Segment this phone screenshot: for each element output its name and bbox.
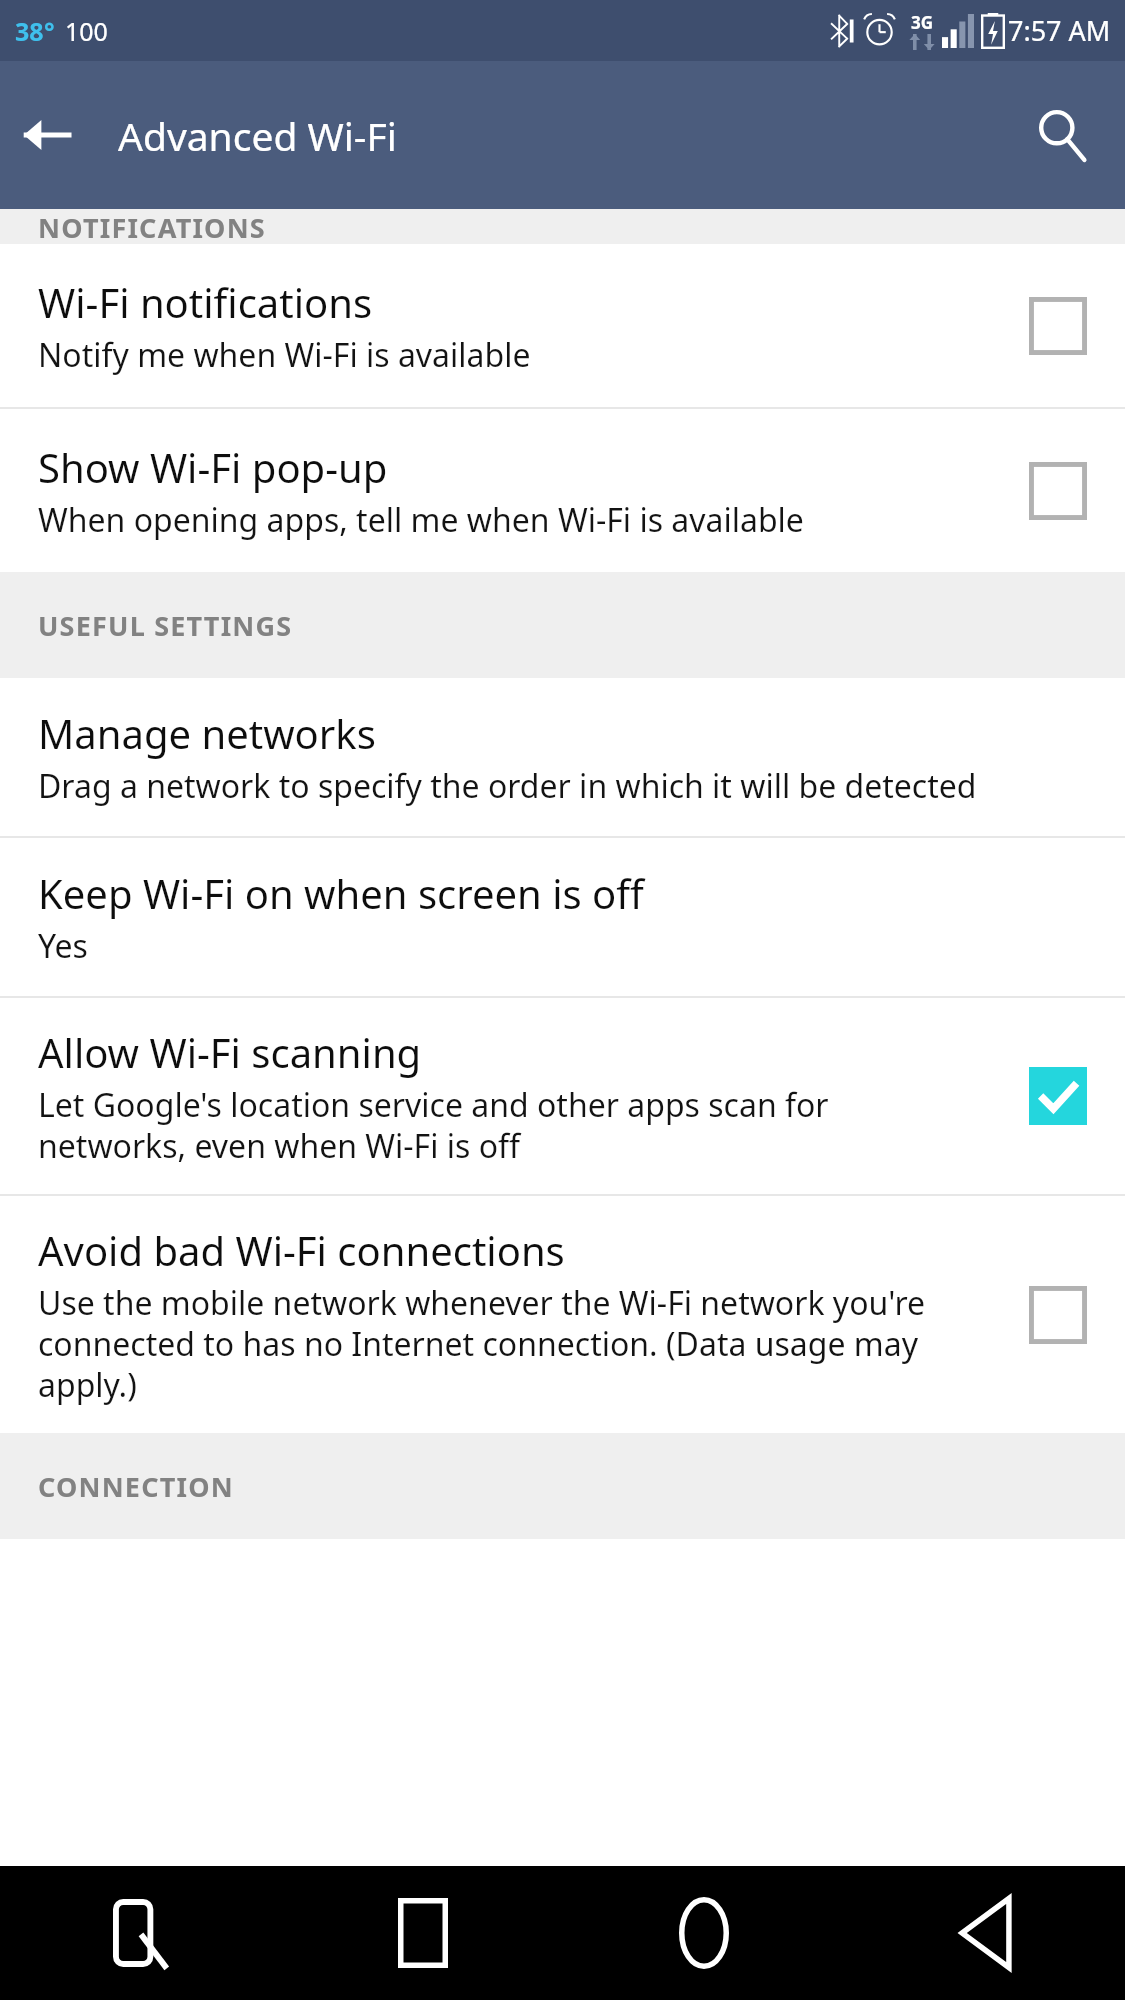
button[interactable]: Manage networks	[0, 678, 1125, 836]
button[interactable]: Home	[563, 1866, 844, 2000]
button[interactable]: Show Wi-Fi pop-up	[0, 409, 1125, 572]
staticText: Let Google's location service and other …	[38, 1083, 970, 1168]
staticText: 38	[15, 14, 44, 48]
button[interactable]: Recent apps	[282, 1866, 563, 2000]
button[interactable]: Avoid bad Wi-Fi connections	[0, 1196, 1125, 1433]
button[interactable]: QSlide	[0, 1866, 282, 2000]
staticText: Keep Wi-Fi on when screen is off	[38, 866, 644, 920]
staticText: Allow Wi-Fi scanning	[38, 1025, 422, 1079]
staticText: Drag a network to specify the order in w…	[38, 764, 977, 808]
staticText: 3G	[911, 11, 934, 34]
button[interactable]: Allow Wi-Fi scanning	[990, 998, 1125, 1194]
staticText: When opening apps, tell me when Wi-Fi is…	[38, 498, 804, 542]
button[interactable]: Wi-Fi notifications	[0, 244, 1125, 407]
staticText: 100	[65, 14, 108, 48]
staticText: °	[44, 14, 55, 48]
button[interactable]: Back	[8, 97, 84, 173]
staticText: 7:57 AM	[1008, 12, 1111, 49]
staticText: Use the mobile network whenever the Wi-F…	[38, 1281, 970, 1407]
button[interactable]: Back	[844, 1866, 1125, 2000]
staticText: NOTIFICATIONS	[38, 209, 266, 244]
staticText: Avoid bad Wi-Fi connections	[38, 1223, 565, 1277]
button[interactable]: Allow Wi-Fi scanning	[0, 998, 1125, 1194]
button[interactable]: Search	[1019, 92, 1105, 178]
button[interactable]: Avoid bad Wi-Fi connections	[990, 1196, 1125, 1433]
staticText: Yes	[38, 924, 88, 968]
staticText: Wi-Fi notifications	[38, 275, 373, 329]
staticText: CONNECTION	[38, 1468, 234, 1505]
button[interactable]: Wi-Fi notifications	[990, 244, 1125, 407]
staticText: USEFUL SETTINGS	[38, 607, 293, 644]
button[interactable]: Show Wi-Fi pop-up	[990, 409, 1125, 572]
staticText: Manage networks	[38, 706, 376, 760]
staticText: Show Wi-Fi pop-up	[38, 440, 388, 494]
button[interactable]: Keep Wi-Fi on when screen is off	[0, 838, 1125, 996]
staticText: Notify me when Wi-Fi is available	[38, 333, 531, 377]
staticText: Advanced Wi-Fi	[118, 109, 397, 162]
